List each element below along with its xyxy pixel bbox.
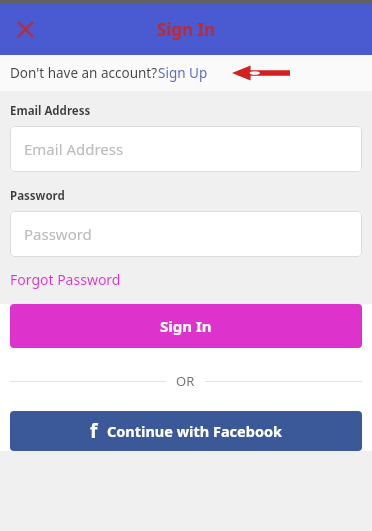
staticText: Password — [10, 188, 65, 204]
staticText: Password — [24, 224, 92, 244]
button[interactable]: f — [10, 411, 362, 451]
staticText: OR — [176, 372, 195, 390]
button[interactable]: Sign Up — [158, 64, 208, 82]
button[interactable]: Sign In — [10, 304, 362, 348]
staticText: Forgot Password — [10, 270, 121, 289]
staticText: f — [90, 418, 98, 444]
staticText: Email Address — [10, 103, 91, 119]
button[interactable]: Close — [8, 12, 42, 46]
button[interactable]: Password — [10, 211, 362, 257]
staticText: Sign In — [160, 316, 212, 336]
staticText: Sign In — [0, 18, 372, 41]
staticText: Email Address — [24, 139, 124, 159]
staticText: Sign Up — [158, 64, 208, 82]
button[interactable]: Email Address — [10, 126, 362, 172]
button[interactable]: Forgot Password — [10, 270, 121, 289]
staticText: Don't have an account? — [10, 64, 158, 82]
staticText: Continue with Facebook — [107, 421, 282, 441]
